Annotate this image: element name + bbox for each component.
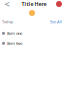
button[interactable]: Back xyxy=(2,0,12,8)
staticText: See All xyxy=(50,19,62,24)
staticText: Today xyxy=(2,19,13,24)
staticText: Title Here xyxy=(21,0,46,8)
staticText: < xyxy=(4,0,9,10)
button[interactable]: See All xyxy=(50,19,62,24)
staticText: Item one xyxy=(7,31,22,36)
staticText: Item two xyxy=(7,41,22,46)
